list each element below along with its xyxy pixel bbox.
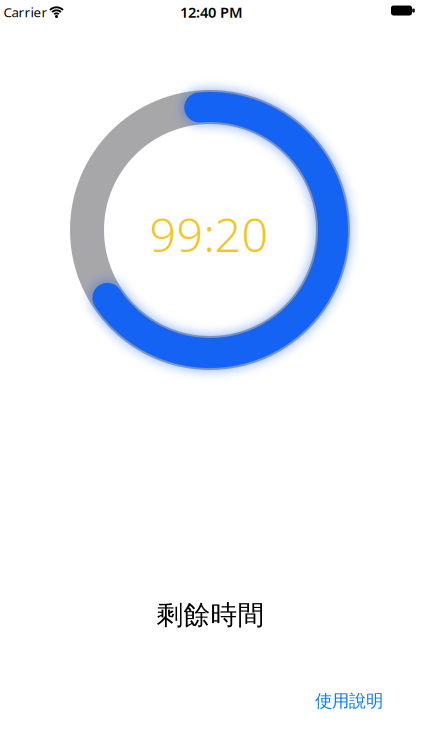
button[interactable]: 使用說明 xyxy=(309,682,389,720)
staticText: 99:20 xyxy=(149,203,268,265)
staticText: Carrier xyxy=(3,3,47,21)
staticText: 剩餘時間 xyxy=(156,599,264,631)
staticText: 使用說明 xyxy=(315,690,383,712)
staticText: 12:40 PM xyxy=(180,2,243,22)
